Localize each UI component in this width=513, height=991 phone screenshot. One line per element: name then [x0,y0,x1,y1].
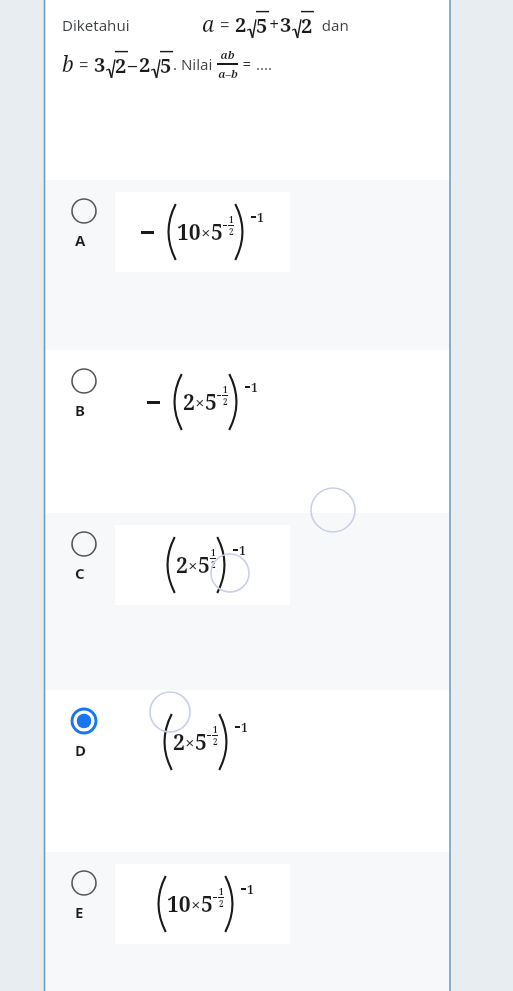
staticText: 3 [94,51,106,78]
staticText: 1 [241,719,248,735]
staticText: 1 [247,881,254,897]
staticText: 2 [301,12,313,39]
staticText: 2 [183,388,195,417]
staticText: × [185,731,195,754]
staticText: 2 [176,551,188,580]
staticText: 2 [139,51,151,78]
staticText: 5 [198,551,210,580]
staticText: 5 [211,218,223,247]
staticText: D [75,740,86,760]
other: Not selected [71,198,97,224]
staticText: 1 [211,547,216,558]
staticText: – [128,52,137,77]
staticText: 2 [213,736,218,747]
staticText: 1 [213,724,218,735]
staticText: ab [220,47,235,62]
staticText: A [75,230,86,250]
staticText: 5 [256,12,268,39]
staticText: 2 [235,11,247,38]
staticText: 3 [280,11,292,38]
staticText: = [238,53,256,75]
staticText: 2 [115,52,127,79]
staticText: 2 [219,898,224,909]
staticText: B [75,400,85,420]
staticText: 1 [239,542,246,558]
staticText: = [74,52,94,77]
button[interactable]: Not selected [45,350,450,513]
button[interactable]: Not selected [45,180,450,350]
staticText: 1 [219,886,224,897]
staticText: . Nilai [173,54,217,74]
button[interactable]: Selected [45,690,450,852]
staticText: 2 [173,728,185,757]
other: Not selected [71,531,97,557]
staticText: = [215,12,235,37]
staticText: 5 [205,388,217,417]
other: Selected [71,708,97,734]
staticText: × [188,554,198,577]
staticText: × [191,893,201,916]
button[interactable]: Not selected [45,513,450,690]
other: Not selected [71,368,97,394]
staticText: 1 [251,379,258,395]
staticText: 1 [223,384,228,395]
staticText: 5 [201,890,213,919]
button[interactable]: Not selected [45,852,450,991]
staticText: 5 [195,728,207,757]
staticText: 1 [257,209,264,225]
staticText: 5 [160,52,172,79]
staticText: Diketahui [62,15,130,35]
staticText: × [195,391,205,414]
staticText: 1 [229,214,234,225]
staticText: b [62,50,74,79]
staticText: 2 [211,559,216,570]
staticText: 10 [167,890,191,919]
staticText: C [75,563,85,583]
staticText: 2 [229,226,234,237]
other: Not selected [71,870,97,896]
staticText: .... [256,54,273,74]
staticText: 10 [177,218,201,247]
staticText: × [201,221,211,244]
staticText: E [75,902,84,922]
staticText: a–b [218,66,238,81]
staticText: a [202,10,215,39]
staticText: dan [314,15,349,35]
staticText: 2 [223,396,228,407]
staticText: + [269,12,280,37]
